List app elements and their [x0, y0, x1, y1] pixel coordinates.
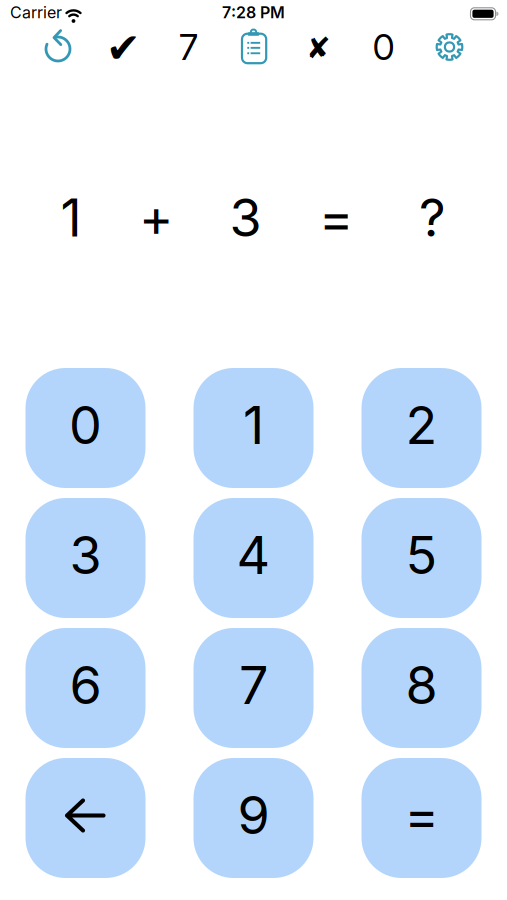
button[interactable]: 4 — [193, 498, 313, 618]
staticText: 3 — [69, 524, 101, 586]
button[interactable]: Restart — [26, 25, 91, 67]
staticText: ? — [419, 187, 446, 248]
staticText: 7 — [239, 654, 268, 716]
staticText: ✘ — [306, 31, 331, 65]
button[interactable]: 5 — [361, 498, 481, 618]
button[interactable]: 6 — [25, 628, 145, 748]
button[interactable]: = — [361, 758, 481, 878]
button[interactable]: 1 — [193, 368, 313, 488]
staticText: 0 — [69, 394, 102, 456]
staticText: 0 — [372, 26, 394, 68]
staticText: 9 — [237, 784, 269, 846]
staticText: 3 — [229, 187, 261, 248]
staticText: 7 — [179, 26, 198, 68]
staticText: ✔ — [106, 24, 141, 71]
button[interactable]: 7 — [193, 628, 313, 748]
button[interactable]: 2 — [361, 368, 481, 488]
staticText: 1 — [60, 187, 81, 248]
button[interactable]: Settings — [416, 25, 481, 67]
staticText: = — [404, 784, 438, 846]
button[interactable]: History — [221, 25, 286, 67]
staticText: + — [139, 187, 173, 248]
staticText: 5 — [405, 524, 437, 586]
staticText: 1 — [243, 394, 264, 456]
staticText: = — [319, 187, 353, 248]
staticText: 8 — [405, 654, 437, 716]
staticText: Carrier — [10, 3, 62, 22]
button[interactable]: 3 — [25, 498, 145, 618]
staticText: 6 — [69, 654, 101, 716]
button[interactable]: 9 — [193, 758, 313, 878]
staticText: 2 — [405, 394, 437, 456]
button[interactable]: Delete — [25, 758, 145, 878]
staticText: 4 — [236, 524, 270, 586]
button[interactable]: 8 — [361, 628, 481, 748]
button[interactable]: 0 — [25, 368, 145, 488]
staticText: 7:28 PM — [222, 3, 285, 22]
